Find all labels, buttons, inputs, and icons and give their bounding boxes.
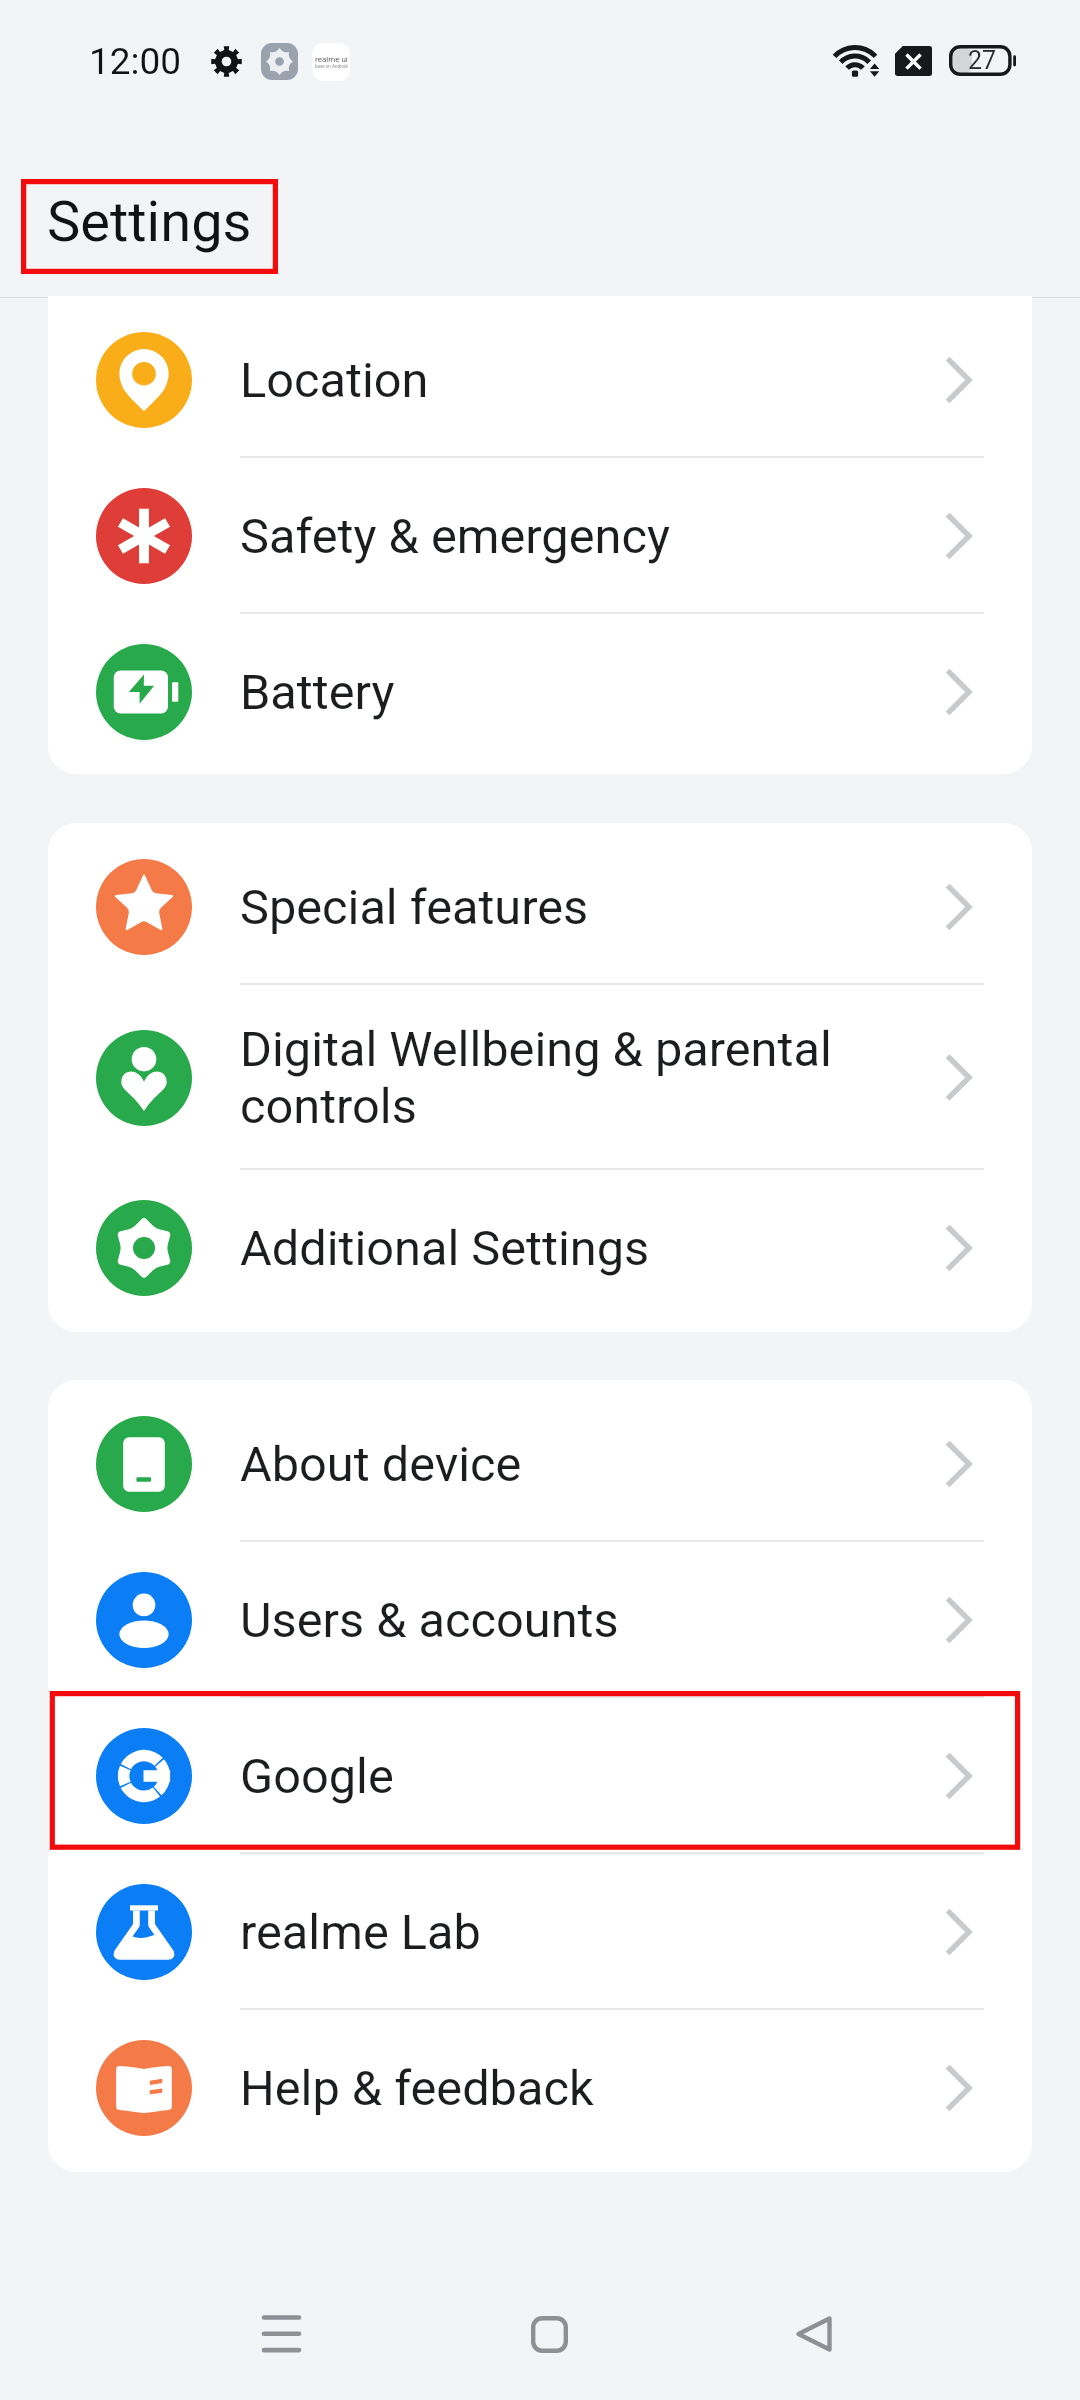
staticText: Help & feedback [240,2060,866,2117]
staticText: Digital Wellbeing & parental controls [240,1021,866,1135]
staticText: About device [240,1436,866,1493]
staticText: Location [240,352,866,409]
button[interactable]: Recent apps [221,2274,341,2394]
button[interactable]: Google [48,1698,1032,1854]
button[interactable]: Battery [48,614,1032,770]
button[interactable]: Special features [48,829,1032,985]
staticText: Google [240,1748,866,1805]
button[interactable]: Location [48,302,1032,458]
staticText: Settings [47,189,252,255]
button[interactable]: Back [754,2274,874,2394]
staticText: base on Android [315,64,348,69]
button[interactable]: Digital Wellbeing & parental controls [48,985,1032,1170]
staticText: realme ui [315,55,348,64]
button[interactable]: About device [48,1386,1032,1542]
button[interactable]: realme Lab [48,1854,1032,2010]
button[interactable]: Additional Settings [48,1170,1032,1326]
button[interactable]: Safety & emergency [48,458,1032,614]
staticText: realme Lab [240,1904,866,1961]
button[interactable]: Home [489,2274,609,2394]
staticText: Users & accounts [240,1592,866,1649]
staticText: Battery [240,664,866,721]
staticText: Safety & emergency [240,508,866,565]
staticText: 12:00 [89,40,182,83]
staticText: 27 [968,46,997,75]
button[interactable]: Users & accounts [48,1542,1032,1698]
staticText: Additional Settings [240,1220,866,1277]
staticText: Special features [240,879,866,936]
button[interactable]: Help & feedback [48,2010,1032,2166]
